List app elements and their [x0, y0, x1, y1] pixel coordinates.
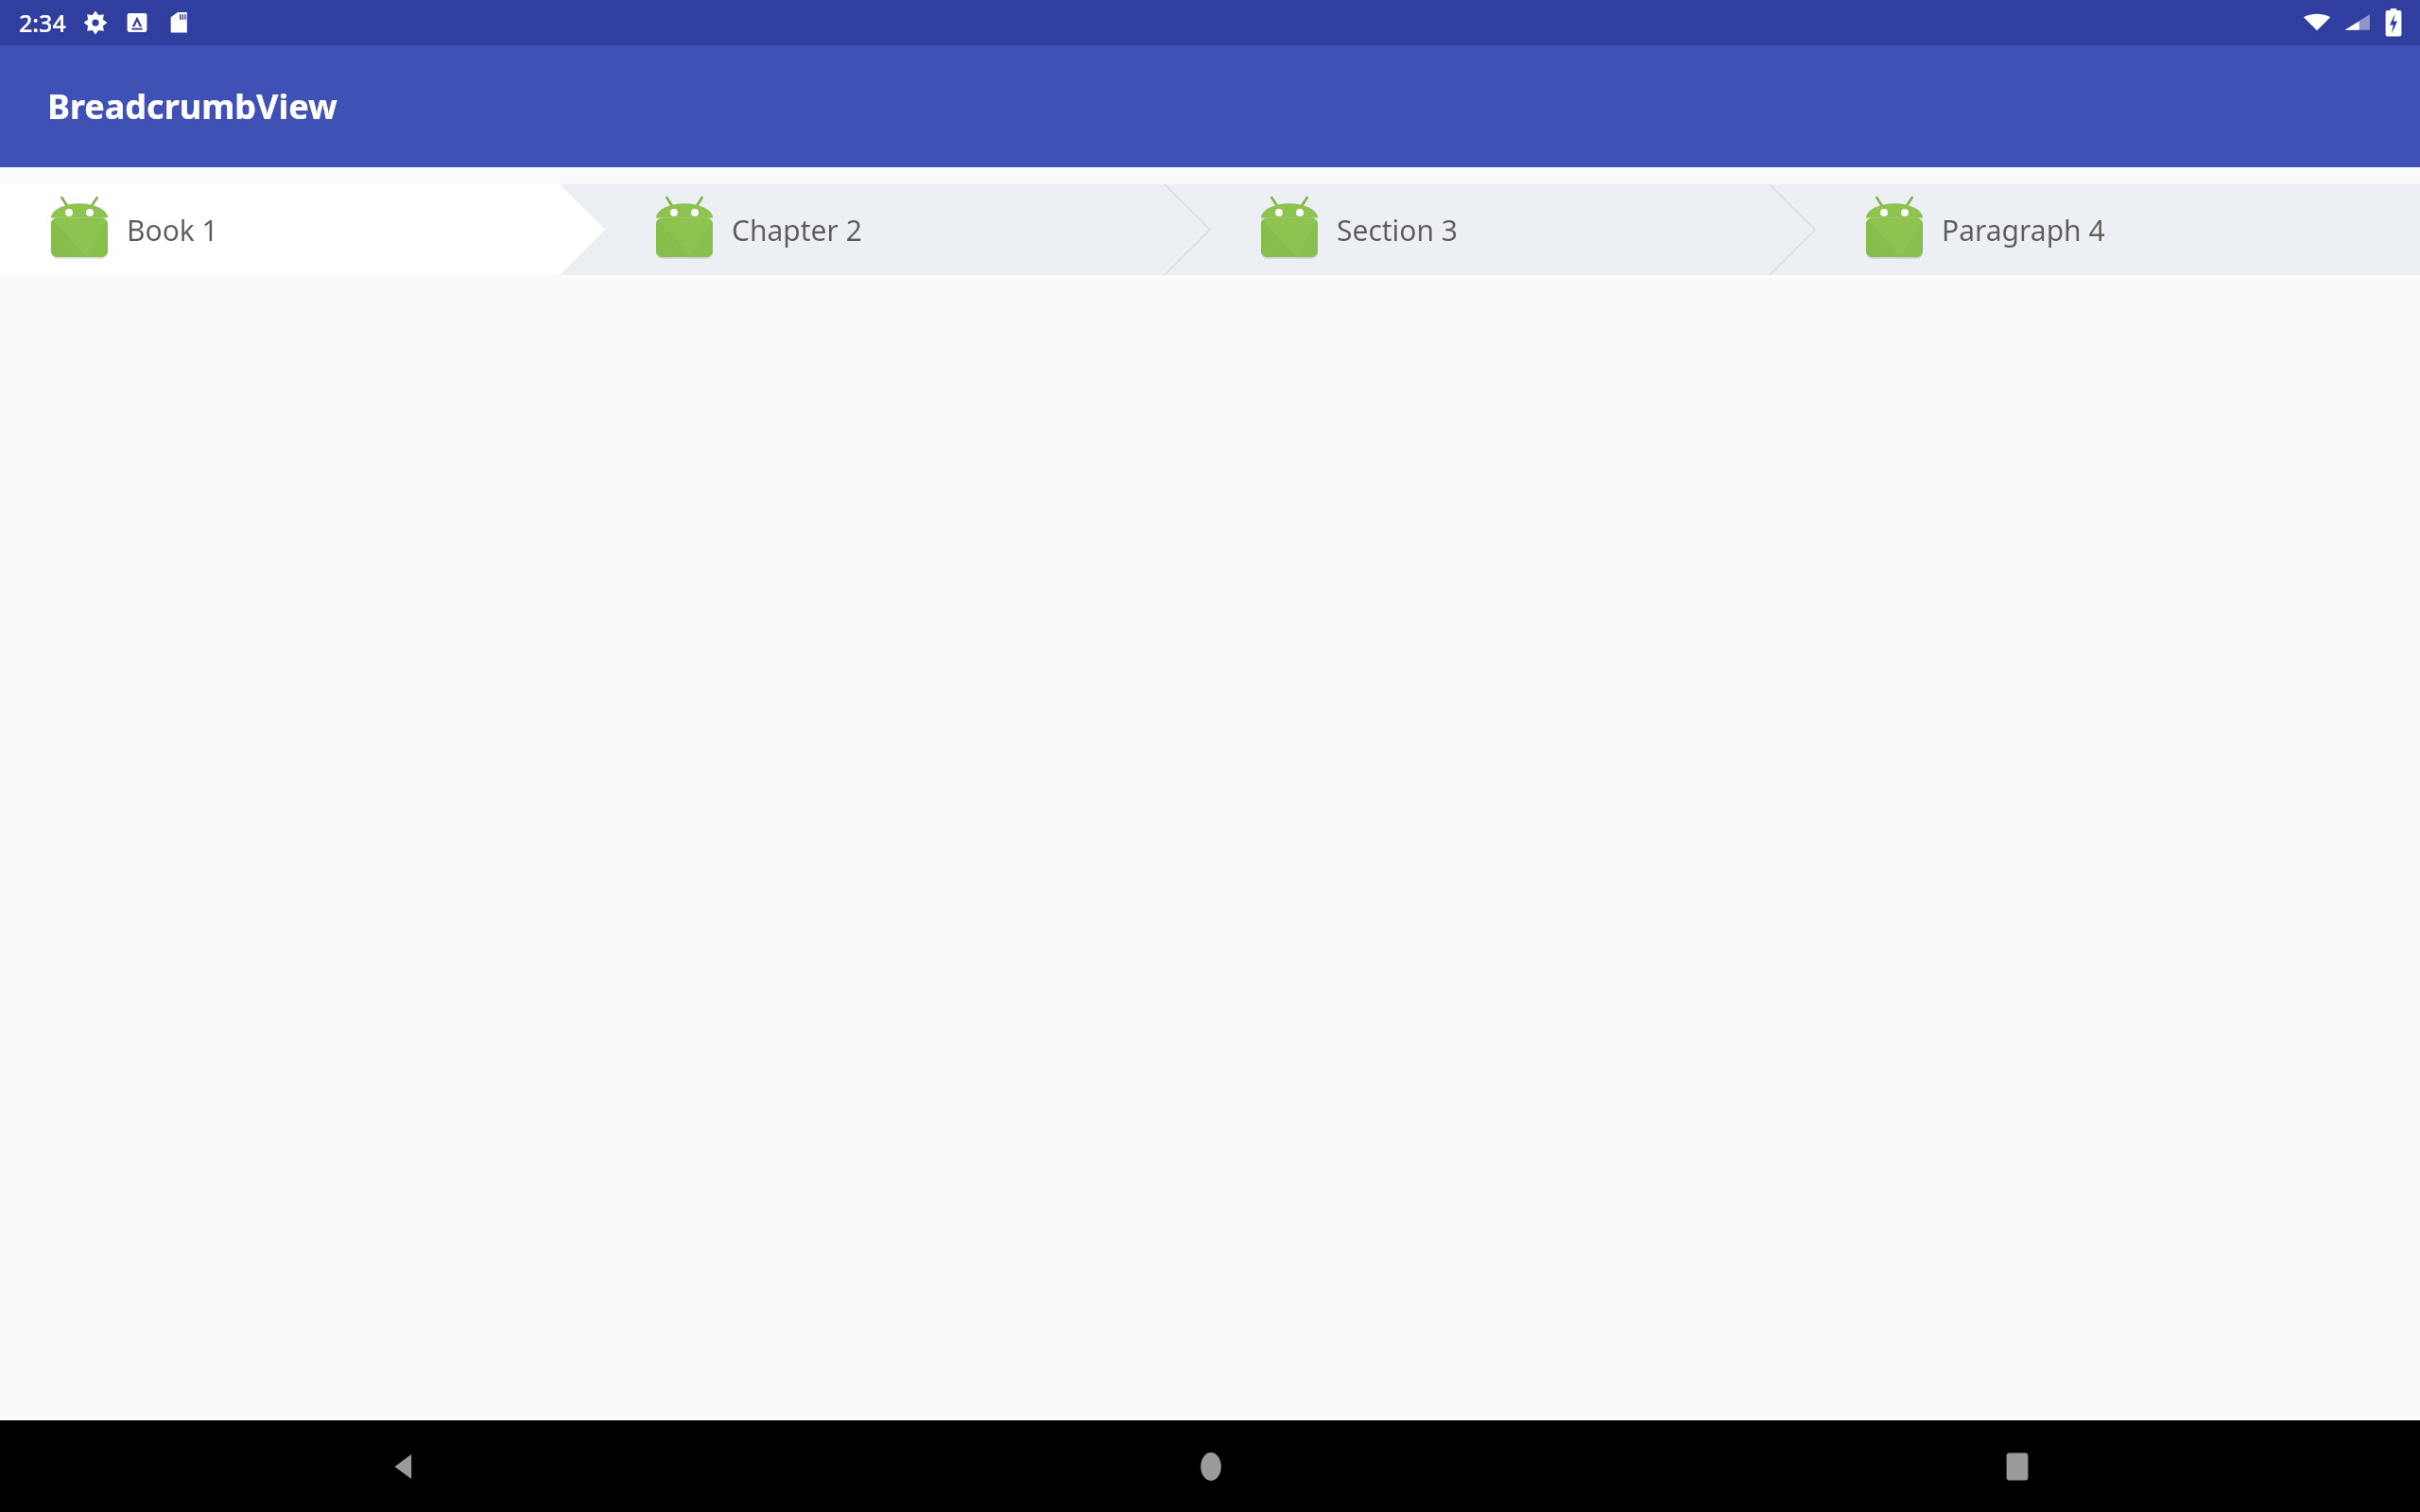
button[interactable]: Book 1: [0, 184, 605, 275]
button[interactable]: Recent apps: [1614, 1420, 2420, 1512]
staticText: Chapter 2: [732, 211, 862, 249]
staticText: Section 3: [1337, 211, 1459, 249]
button[interactable]: Section 3: [1210, 184, 1815, 275]
staticText: 2:34: [19, 7, 66, 39]
staticText: BreadcrumbView: [47, 83, 337, 129]
button[interactable]: Back: [0, 1420, 807, 1512]
button[interactable]: Home: [807, 1420, 1614, 1512]
button[interactable]: Paragraph 4: [1815, 184, 2420, 275]
staticText: Book 1: [127, 211, 218, 249]
staticText: Paragraph 4: [1942, 211, 2105, 249]
button[interactable]: Chapter 2: [605, 184, 1210, 275]
